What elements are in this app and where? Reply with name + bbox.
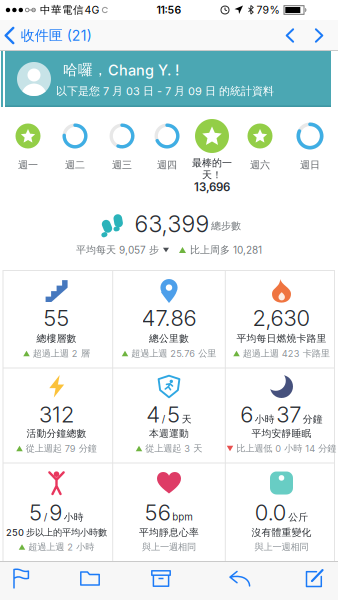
staticText: 中華電信 (40, 3, 84, 17)
staticText: 5 (29, 499, 42, 526)
staticText: 47.86 (141, 305, 196, 331)
staticText: 週一 (18, 159, 38, 171)
staticText: 比上週低 0 小時 14 分鐘 (236, 443, 336, 454)
staticText: 天！ (202, 169, 222, 181)
staticText: 250 步以上的平均小時數 (6, 527, 107, 538)
staticText: 沒有體重變化 (251, 526, 311, 539)
button[interactable]: 撰寫新郵件 (305, 569, 324, 587)
staticText: 5 (167, 401, 180, 428)
staticText: 最棒的一 (192, 157, 232, 169)
staticText: 總步數 (211, 220, 241, 232)
staticText: 週四 (157, 159, 177, 171)
staticText: 63,399 (134, 210, 209, 238)
staticText: 公斤 (288, 511, 308, 523)
staticText: 平均每天 9,057 步 (76, 244, 159, 256)
staticText: 哈囉，Chang Y. ! (63, 61, 179, 79)
staticText: 11:56 (156, 4, 181, 16)
staticText: 收件匣 (21) (21, 27, 92, 44)
staticText: 本週運動 (149, 427, 189, 440)
staticText: 總公里數 (149, 332, 189, 345)
staticText: 9 (49, 499, 62, 526)
staticText: 13,696 (194, 180, 230, 194)
staticText: 55 (43, 305, 69, 331)
staticText: 週三 (112, 159, 132, 171)
staticText: 79% (256, 4, 279, 16)
staticText: 週二 (65, 159, 85, 171)
staticText: 2,630 (252, 305, 310, 331)
staticText: 超過上週 25.76 公里 (131, 348, 216, 359)
staticText: bpm (172, 511, 193, 523)
staticText: 以下是您 7 月 03 日 - 7 月 09 日 的統計資料 (56, 84, 274, 98)
staticText: 超過上週 2 小時 (28, 541, 94, 553)
staticText: 比上周多 10,281 (190, 244, 262, 256)
button[interactable]: 移至資料夾 (80, 569, 100, 587)
staticText: / (162, 413, 166, 425)
button[interactable]: 封存 (151, 570, 171, 587)
staticText: 0.0 (255, 499, 287, 526)
staticText: 週日 (300, 159, 320, 171)
staticText: 分鐘 (303, 413, 323, 425)
staticText: 37 (276, 401, 301, 428)
staticText: 總樓層數 (36, 332, 76, 345)
staticText: 天 (182, 413, 192, 425)
staticText: 56 (145, 499, 171, 526)
button[interactable]: 下一封 (314, 28, 323, 42)
staticText: 平均安靜睡眠 (251, 427, 311, 440)
staticText: 小時 (64, 511, 84, 523)
staticText: 週六 (250, 159, 270, 171)
staticText: 與上一週相同 (142, 541, 196, 553)
staticText: 活動分鐘總數 (26, 427, 86, 440)
staticText: 超過上週 423 卡路里 (243, 348, 330, 359)
staticText: 312 (39, 401, 74, 428)
staticText: 平均每日燃燒卡路里 (236, 332, 326, 345)
staticText: 4G (84, 4, 99, 16)
staticText: 超過上週 2 層 (33, 348, 90, 359)
staticText: 4 (146, 401, 160, 428)
staticText: / (44, 511, 48, 523)
button[interactable]: 上一封 (285, 28, 294, 42)
staticText: 6 (240, 401, 253, 428)
staticText: 從上週起 3 天 (145, 443, 202, 454)
staticText: 與上一週相同 (254, 541, 308, 553)
staticText: 從上週起 79 分鐘 (26, 443, 97, 454)
button[interactable]: 標示 (13, 568, 29, 588)
button[interactable]: 回覆 (229, 570, 251, 586)
staticText: 平均靜息心率 (139, 526, 199, 539)
button[interactable]: 收件匣 (21) (4, 27, 92, 44)
staticText: 小時 (255, 413, 275, 425)
